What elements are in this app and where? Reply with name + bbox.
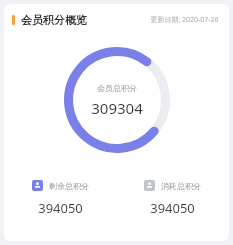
button[interactable]: 消耗总积分 (116, 178, 229, 219)
staticText: 会员总积分 (97, 83, 137, 93)
button[interactable]: 剩余总积分 (4, 178, 116, 219)
staticText: 消耗总积分 (161, 181, 201, 191)
staticText: 309304 (91, 98, 143, 118)
button[interactable]: 会员总积分 (64, 47, 170, 153)
staticText: 更新日期: 2020-07-26 (150, 15, 219, 25)
other: 剩余总积分 (32, 180, 43, 191)
staticText: 394050 (150, 199, 195, 217)
other: 消耗总积分 (144, 180, 155, 191)
staticText: 394050 (38, 199, 83, 217)
staticText: 会员积分概览 (21, 13, 87, 27)
staticText: 剩余总积分 (49, 181, 89, 191)
